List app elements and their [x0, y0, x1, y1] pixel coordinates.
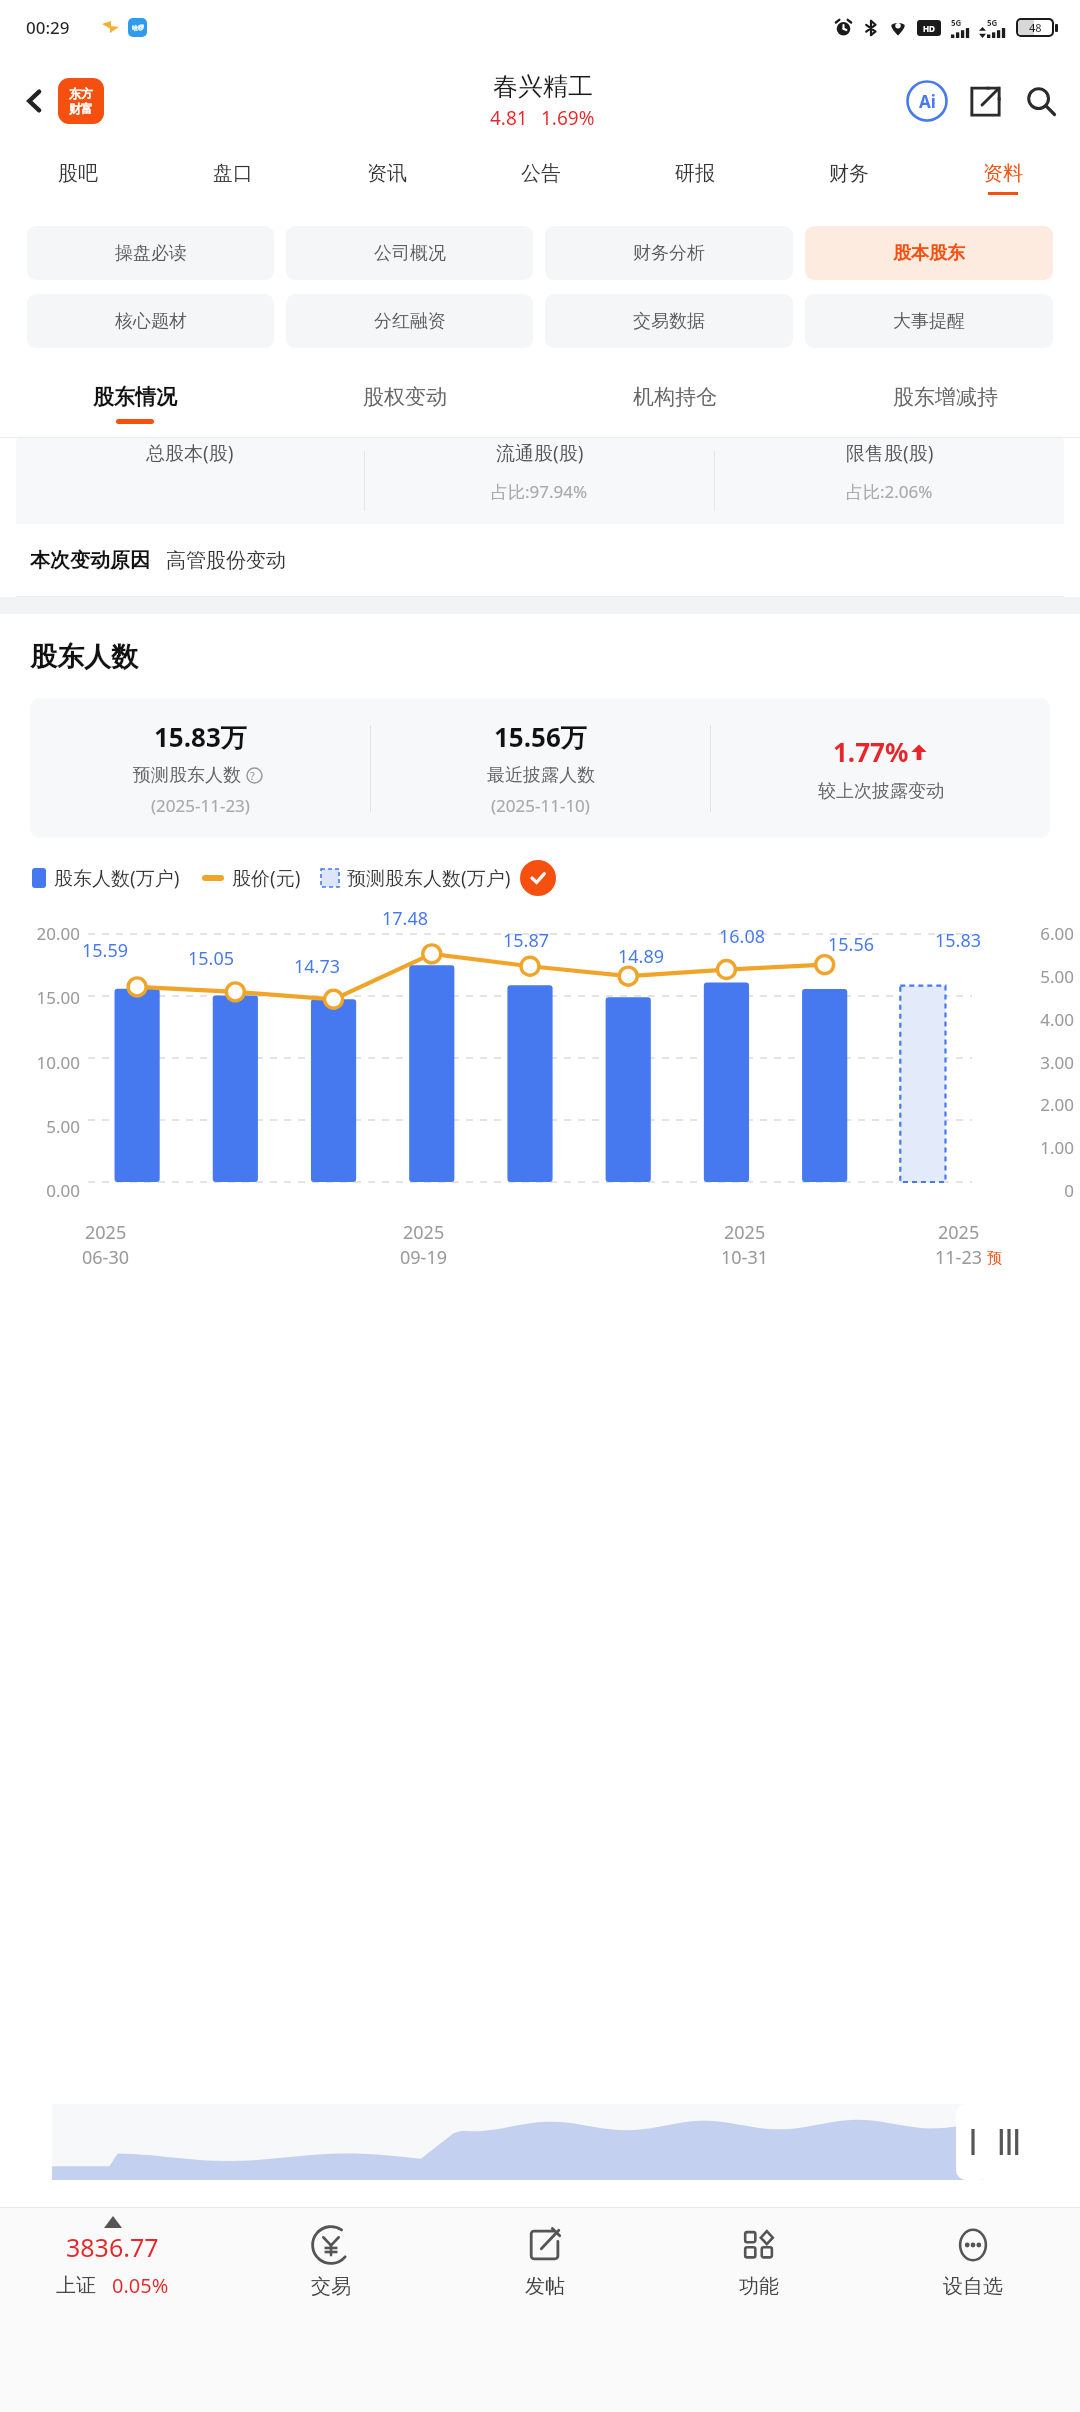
- staticText: 功能: [739, 2274, 779, 2299]
- button[interactable]: 股东情况: [0, 365, 270, 437]
- button[interactable]: 核心题材: [27, 294, 274, 348]
- staticText: ?: [250, 768, 255, 783]
- button[interactable]: Toggle forecast series: [520, 860, 556, 896]
- staticText: 本次变动原因: [30, 548, 150, 573]
- button[interactable]: 分红融资: [286, 294, 533, 348]
- staticText: 核心题材: [115, 310, 187, 333]
- staticText: 5.00: [982, 965, 1074, 988]
- staticText: 4.00: [982, 1008, 1074, 1031]
- staticText: 3836.77: [66, 2230, 159, 2264]
- staticText: 15.83: [935, 928, 982, 953]
- button[interactable]: 大事提醒: [805, 294, 1053, 348]
- staticText: 设自选: [943, 2274, 1003, 2299]
- staticText: 2025: [938, 1220, 980, 1245]
- staticText: 0: [982, 1179, 1074, 1202]
- staticText: 15.56万: [494, 719, 587, 755]
- staticText: 财富: [69, 101, 93, 116]
- staticText: 预测股东人数: [133, 764, 241, 787]
- staticText: 操盘必读: [115, 242, 187, 265]
- button[interactable]: 盘口: [155, 147, 310, 209]
- staticText: 06-30: [82, 1245, 129, 1270]
- button[interactable]: AI assistant: [904, 78, 950, 124]
- staticText: 14.73: [294, 954, 341, 979]
- button[interactable]: 操盘必读: [27, 226, 274, 280]
- staticText: 公告: [521, 161, 561, 186]
- staticText: 大事提醒: [893, 310, 965, 333]
- staticText: 预: [987, 1249, 1002, 1268]
- staticText: 15.05: [188, 946, 235, 971]
- staticText: 11-23: [935, 1245, 982, 1270]
- staticText: 东方: [69, 86, 93, 101]
- staticText: 0.05%: [112, 2272, 169, 2299]
- button[interactable]: 股东增减持: [810, 365, 1080, 437]
- button[interactable]: 3836.77: [0, 2208, 224, 2360]
- button[interactable]: 功能: [652, 2208, 866, 2360]
- staticText: 0.00: [4, 1179, 80, 1202]
- button[interactable]: Back: [14, 80, 56, 122]
- staticText: 资料: [983, 161, 1023, 186]
- button[interactable]: 发帖: [438, 2208, 652, 2360]
- staticText: 15.56: [828, 932, 875, 957]
- staticText: (2025-11-23): [151, 794, 250, 817]
- button[interactable]: 资料: [926, 147, 1080, 209]
- staticText: 16.08: [719, 924, 766, 949]
- button[interactable]: 研报: [618, 147, 772, 209]
- staticText: 5G: [987, 17, 998, 28]
- staticText: 春兴精工: [493, 71, 593, 102]
- staticText: 2025: [724, 1220, 766, 1245]
- staticText: 1.77%: [833, 734, 909, 769]
- button[interactable]: 财务: [772, 147, 926, 209]
- button[interactable]: 东方: [58, 78, 104, 124]
- staticText: 00:29: [26, 16, 70, 39]
- staticText: 17.48: [382, 906, 429, 931]
- staticText: 最近披露人数: [487, 764, 595, 787]
- staticText: 股东情况: [93, 384, 177, 410]
- staticText: 股吧: [58, 161, 98, 186]
- staticText: 占比:2.06%: [846, 480, 933, 503]
- staticText: Ai: [919, 90, 936, 113]
- staticText: 盘口: [213, 161, 253, 186]
- button[interactable]: 股权变动: [270, 365, 540, 437]
- staticText: 4.81: [490, 105, 528, 131]
- staticText: 14.89: [618, 944, 665, 969]
- staticText: 09-19: [400, 1245, 447, 1270]
- staticText: 15.59: [82, 938, 129, 963]
- staticText: 股东增减持: [893, 384, 998, 410]
- button[interactable]: 机构持仓: [540, 365, 810, 437]
- button[interactable]: 交易数据: [545, 294, 793, 348]
- staticText: 财务分析: [633, 242, 705, 265]
- button[interactable]: 股吧: [0, 147, 155, 209]
- button[interactable]: 股本股东: [805, 226, 1053, 280]
- staticText: HD: [923, 23, 935, 34]
- staticText: 股东人数(万户): [54, 865, 180, 891]
- staticText: 股价(元): [232, 865, 301, 891]
- staticText: 15.87: [503, 928, 550, 953]
- button[interactable]: Share: [962, 78, 1008, 124]
- staticText: 1.00: [982, 1136, 1074, 1159]
- button[interactable]: 资讯: [310, 147, 464, 209]
- button[interactable]: 公告: [464, 147, 618, 209]
- button[interactable]: 公司概况: [286, 226, 533, 280]
- staticText: 占比:97.94%: [491, 480, 588, 503]
- staticText: 资讯: [367, 161, 407, 186]
- staticText: 股东人数: [30, 640, 138, 674]
- staticText: 哈啰: [132, 24, 144, 32]
- staticText: (2025-11-10): [491, 794, 590, 817]
- staticText: 5G: [951, 17, 962, 28]
- button[interactable]: Chart range handle: [972, 2104, 1046, 2180]
- staticText: 发帖: [525, 2274, 565, 2299]
- staticText: 股本股东: [893, 242, 965, 265]
- staticText: 3.00: [982, 1051, 1074, 1074]
- button[interactable]: Search: [1018, 78, 1064, 124]
- button[interactable]: 财务分析: [545, 226, 793, 280]
- button[interactable]: 设自选: [866, 2208, 1080, 2360]
- staticText: 高管股份变动: [166, 548, 286, 573]
- staticText: 预测股东人数(万户): [347, 865, 511, 891]
- staticText: 2.00: [982, 1093, 1074, 1116]
- staticText: 公司概况: [374, 242, 446, 265]
- staticText: 股权变动: [363, 384, 447, 410]
- staticText: 分红融资: [374, 310, 446, 333]
- staticText: 交易数据: [633, 310, 705, 333]
- button[interactable]: 交易: [224, 2208, 438, 2360]
- staticText: 上证: [56, 2273, 96, 2298]
